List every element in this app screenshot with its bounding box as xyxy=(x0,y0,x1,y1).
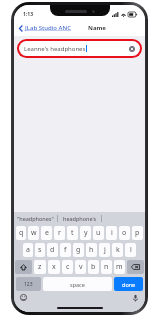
staticText: c xyxy=(66,262,70,272)
button[interactable]: done xyxy=(114,277,143,291)
button[interactable]: l xyxy=(125,243,136,257)
staticText: 1:13 xyxy=(23,11,33,18)
staticText: i xyxy=(111,228,113,238)
button[interactable]: 123 xyxy=(16,277,41,291)
staticText: s xyxy=(38,245,42,255)
button[interactable]: "headphones" xyxy=(14,212,57,224)
button[interactable]: u xyxy=(93,226,104,240)
button[interactable]: v xyxy=(75,260,86,274)
button[interactable]: n xyxy=(101,260,112,274)
staticText: a xyxy=(26,245,30,255)
staticText: y xyxy=(84,228,88,238)
staticText: h xyxy=(89,245,94,255)
staticText: Name xyxy=(88,24,106,32)
staticText: done xyxy=(122,281,136,288)
staticText: d xyxy=(50,245,55,255)
button[interactable]: e xyxy=(41,226,52,240)
staticText: w xyxy=(31,228,37,238)
staticText: t xyxy=(71,228,74,238)
button[interactable]: k xyxy=(112,243,123,257)
button[interactable]: i xyxy=(106,226,117,240)
staticText: g xyxy=(76,245,81,255)
staticText: p xyxy=(135,228,140,238)
button[interactable]: f xyxy=(60,243,71,257)
button[interactable]: w xyxy=(28,226,39,240)
button[interactable]: j xyxy=(99,243,110,257)
staticText: u xyxy=(96,228,101,238)
button[interactable]: c xyxy=(62,260,73,274)
button[interactable]: space xyxy=(43,277,112,291)
button[interactable]: o xyxy=(119,226,130,240)
button[interactable]: Backspace xyxy=(127,260,144,274)
button[interactable]: Dictation xyxy=(131,293,140,302)
staticText: z xyxy=(38,262,42,272)
staticText: "headphones" xyxy=(17,215,54,222)
staticText: o xyxy=(122,228,127,238)
button[interactable]: y xyxy=(80,226,91,240)
button[interactable]: Leanne's headphones xyxy=(19,41,140,56)
button[interactable]: p xyxy=(132,226,143,240)
staticText: b xyxy=(91,262,96,272)
staticText: f xyxy=(64,245,67,255)
staticText: q xyxy=(19,228,24,238)
button[interactable]: t xyxy=(67,226,78,240)
staticText: e xyxy=(45,228,49,238)
staticText: Leanne's headphones xyxy=(24,45,86,53)
staticText: j xyxy=(104,245,106,255)
button[interactable]: r xyxy=(54,226,65,240)
button[interactable]: b xyxy=(88,260,99,274)
staticText: k xyxy=(116,245,120,255)
button[interactable]: Emoji xyxy=(19,293,28,302)
button[interactable]: a xyxy=(23,243,33,257)
staticText: n xyxy=(104,262,109,272)
button[interactable]: g xyxy=(73,243,84,257)
other: Clear text xyxy=(129,46,135,52)
button[interactable]: h xyxy=(86,243,97,257)
staticText: r xyxy=(58,228,61,238)
staticText: x xyxy=(52,262,56,272)
button[interactable]: m xyxy=(114,260,125,274)
staticText: JLab Studio ANC xyxy=(25,24,71,32)
button[interactable]: s xyxy=(35,243,45,257)
button[interactable]: d xyxy=(47,243,58,257)
button[interactable]: headphone's xyxy=(58,212,101,224)
button[interactable]: Shift xyxy=(15,260,32,274)
staticText: v xyxy=(79,262,83,272)
button[interactable]: z xyxy=(34,260,46,274)
other: Back xyxy=(19,25,23,32)
staticText: 123 xyxy=(24,281,33,288)
staticText: space xyxy=(70,281,85,288)
staticText: headphone's xyxy=(63,215,97,222)
staticText: m xyxy=(116,262,123,272)
button[interactable]: q xyxy=(16,226,26,240)
button[interactable]: Back xyxy=(19,24,71,32)
button[interactable]: x xyxy=(48,260,60,274)
staticText: l xyxy=(130,245,132,255)
